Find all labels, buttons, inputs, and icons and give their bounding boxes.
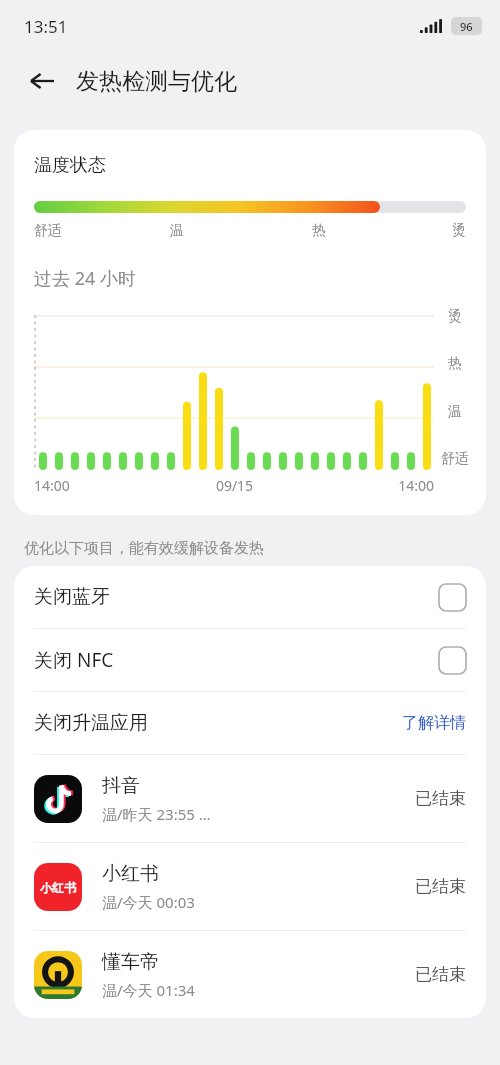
staticText: 96 bbox=[460, 19, 473, 34]
button[interactable]: Back bbox=[20, 59, 64, 103]
staticText: 已结束 bbox=[415, 788, 466, 809]
staticText: 热 bbox=[312, 222, 326, 240]
staticText: 懂车帝 bbox=[102, 950, 159, 974]
staticText: 优化以下项目，能有效缓解设备发热 bbox=[24, 539, 264, 558]
button[interactable]: 小红书 bbox=[14, 843, 486, 930]
staticText: 温 bbox=[170, 222, 184, 240]
staticText: 已结束 bbox=[415, 876, 466, 897]
staticText: 小红书 bbox=[102, 862, 159, 886]
staticText: 14:00 bbox=[301, 476, 434, 495]
button[interactable]: 关闭蓝牙 bbox=[14, 566, 486, 628]
staticText: 关闭 NFC bbox=[34, 647, 439, 673]
staticText: 温/今天 00:03 bbox=[102, 892, 195, 912]
staticText: 09/15 bbox=[168, 476, 301, 495]
staticText: 温 bbox=[448, 403, 462, 421]
staticText: 已结束 bbox=[415, 964, 466, 985]
staticText: 烫 bbox=[452, 222, 466, 240]
staticText: 温/今天 01:34 bbox=[102, 980, 195, 1000]
staticText: 温度状态 bbox=[34, 154, 106, 177]
staticText: 发热检测与优化 bbox=[76, 67, 237, 96]
button[interactable]: 懂车帝 bbox=[14, 931, 486, 1018]
button[interactable]: 抖音 bbox=[14, 755, 486, 842]
staticText: 温/昨天 23:55 … bbox=[102, 804, 211, 824]
staticText: 了解详情 bbox=[402, 713, 466, 733]
staticText: 舒适 bbox=[34, 222, 62, 240]
button[interactable]: 关闭 NFC bbox=[14, 629, 486, 691]
staticText: 关闭升温应用 bbox=[34, 711, 402, 735]
staticText: 舒适 bbox=[441, 450, 469, 468]
staticText: 13:51 bbox=[24, 15, 68, 38]
button[interactable]: 了解详情 bbox=[402, 713, 466, 733]
staticText: 抖音 bbox=[102, 774, 140, 798]
staticText: 过去 24 小时 bbox=[34, 266, 136, 291]
staticText: 烫 bbox=[448, 308, 462, 326]
staticText: 热 bbox=[448, 355, 462, 373]
button[interactable]: 关闭升温应用 bbox=[14, 692, 486, 754]
staticText: 14:00 bbox=[34, 476, 168, 495]
staticText: 小红书 bbox=[40, 880, 76, 895]
staticText: 关闭蓝牙 bbox=[34, 585, 439, 609]
